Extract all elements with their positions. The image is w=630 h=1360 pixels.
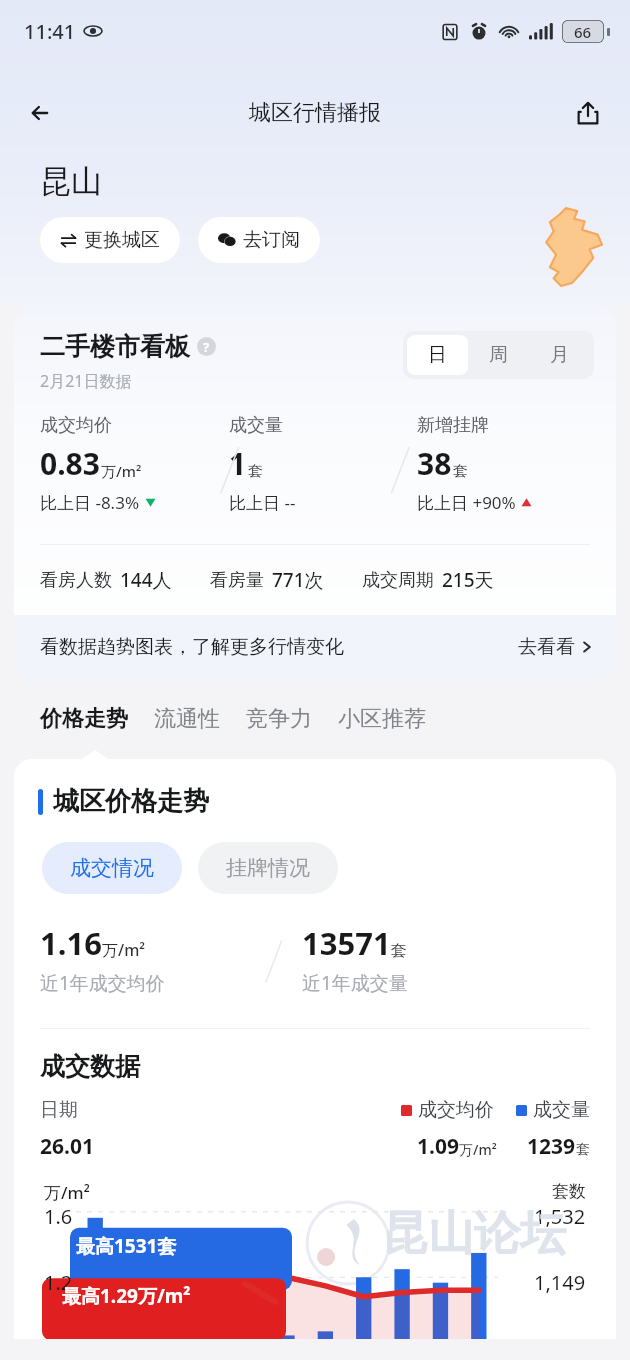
staticText: 周 — [489, 343, 508, 367]
staticText: 万/m² — [102, 939, 146, 961]
staticText: 二手楼市看板 — [40, 331, 190, 362]
button[interactable]: 挂牌情况 — [198, 842, 338, 894]
button[interactable]: 说明 — [197, 337, 216, 356]
staticText: 日期 — [40, 1098, 78, 1122]
staticText: 城区价格走势 — [53, 785, 209, 818]
staticText: 更换城区 — [84, 228, 160, 252]
staticText: 万/m² — [459, 1140, 497, 1159]
button[interactable]: 竞争力 — [246, 705, 338, 733]
staticText: 价格走势 — [40, 705, 128, 733]
staticText: 1 — [229, 443, 247, 484]
button[interactable]: 小区推荐 — [338, 705, 452, 733]
button[interactable]: 成交情况 — [42, 842, 182, 894]
staticText: 成交量 — [533, 1098, 590, 1122]
staticText: 看数据趋势图表，了解更多行情变化 — [40, 635, 344, 659]
button[interactable]: 去订阅 — [198, 217, 320, 263]
staticText: 1,149 — [534, 1269, 586, 1296]
staticText: 昆山 — [40, 162, 102, 201]
staticText: 2月21日数据 — [40, 370, 132, 392]
staticText: 近1年成交量 — [302, 970, 408, 996]
staticText: 成交均价 — [40, 414, 112, 437]
staticText: 去订阅 — [243, 228, 300, 252]
button[interactable]: 更换城区 — [40, 217, 180, 263]
button[interactable]: 周 — [468, 335, 529, 375]
staticText: 套 — [248, 462, 263, 481]
staticText: 比上日 -8.3% — [40, 491, 140, 514]
staticText: 1.16 — [40, 922, 102, 964]
staticText: 套 — [391, 941, 407, 961]
staticText: 挂牌情况 — [226, 855, 310, 881]
button[interactable]: Back — [18, 89, 66, 137]
staticText: 去看看 — [518, 635, 575, 659]
staticText: 竞争力 — [246, 705, 312, 733]
staticText: ? — [203, 338, 210, 356]
staticText: 1.09 — [417, 1132, 459, 1161]
staticText: 小区推荐 — [338, 705, 426, 733]
staticText: 看房量 — [210, 569, 264, 592]
staticText: 最高1531套 — [76, 1233, 177, 1259]
staticText: 1,532 — [534, 1203, 586, 1230]
button[interactable]: 月 — [529, 335, 590, 375]
staticText: 最高1.29万/m² — [62, 1283, 191, 1309]
button[interactable]: 价格走势 — [40, 705, 154, 733]
staticText: 26.01 — [40, 1132, 94, 1161]
staticText: 近1年成交均价 — [40, 970, 165, 996]
staticText: 1.6 — [44, 1203, 73, 1230]
staticText: 66 — [574, 22, 592, 42]
staticText: 11:41 — [24, 18, 76, 45]
staticText: 日 — [428, 343, 447, 367]
staticText: 比上日 +90% — [417, 491, 516, 514]
staticText: 成交均价 — [418, 1098, 494, 1122]
staticText: 新增挂牌 — [417, 414, 489, 437]
staticText: 套 — [453, 462, 468, 481]
staticText: 215天 — [442, 567, 494, 593]
staticText: 月 — [550, 343, 569, 367]
button[interactable]: Share — [564, 89, 612, 137]
staticText: 1.2 — [44, 1269, 73, 1296]
staticText: 成交数据 — [40, 1051, 140, 1082]
staticText: 13571 — [302, 922, 391, 964]
staticText: 套 — [576, 1141, 590, 1159]
button[interactable]: 日 — [407, 335, 468, 375]
staticText: 0.83 — [40, 443, 100, 484]
staticText: 万/m² — [44, 1181, 90, 1204]
staticText: 流通性 — [154, 705, 220, 733]
staticText: 771次 — [272, 567, 324, 593]
staticText: 看房人数 — [40, 569, 112, 592]
staticText: 比上日 -- — [229, 491, 296, 514]
staticText: 成交周期 — [362, 569, 434, 592]
button[interactable]: 流通性 — [154, 705, 246, 733]
staticText: 万/m² — [101, 461, 142, 481]
staticText: 套数 — [552, 1181, 586, 1202]
staticText: 成交量 — [229, 414, 283, 437]
staticText: 38 — [417, 443, 452, 484]
staticText: 1239 — [527, 1132, 576, 1161]
button[interactable]: 看数据趋势图表，了解更多行情变化 — [14, 615, 616, 679]
staticText: 144人 — [120, 567, 172, 593]
staticText: 昆山论坛 — [382, 1205, 566, 1263]
staticText: 成交情况 — [70, 855, 154, 881]
staticText: 城区行情播报 — [249, 99, 381, 127]
